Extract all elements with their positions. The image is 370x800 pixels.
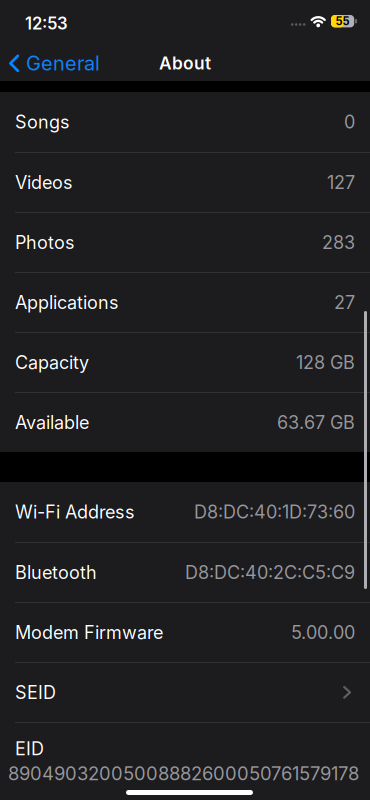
staticText: Wi-Fi Address [15, 501, 135, 523]
button[interactable]: Capacity [0, 332, 370, 392]
staticText: EID [15, 738, 44, 759]
button[interactable]: Photos [0, 212, 370, 272]
staticText: 55 [336, 14, 350, 28]
button[interactable]: Available [0, 392, 370, 452]
button[interactable]: Applications [0, 272, 370, 332]
button[interactable]: Wi-Fi Address [0, 482, 370, 542]
staticText: Capacity [15, 351, 89, 373]
staticText: About [159, 53, 211, 74]
button[interactable]: Songs [0, 92, 370, 152]
button[interactable]: EID [0, 722, 370, 800]
staticText: 63.67 GB [277, 411, 355, 433]
staticText: 27 [334, 291, 355, 313]
button[interactable]: Modem Firmware [0, 602, 370, 662]
button[interactable]: Bluetooth [0, 542, 370, 602]
staticText: 5.00.00 [291, 621, 355, 643]
staticText: D8:DC:40:1D:73:60 [194, 501, 355, 523]
staticText: Available [15, 411, 89, 433]
staticText: 89049032005008882600050761579178 [8, 762, 359, 785]
staticText: Applications [15, 291, 119, 313]
staticText: Bluetooth [15, 561, 97, 583]
staticText: D8:DC:40:2C:C5:C9 [185, 561, 355, 583]
staticText: Photos [15, 231, 75, 253]
button[interactable]: SEID [0, 662, 370, 722]
staticText: SEID [15, 681, 56, 703]
staticText: Songs [15, 111, 70, 133]
staticText: 0 [344, 111, 355, 133]
staticText: Modem Firmware [15, 621, 163, 643]
staticText: 128 GB [296, 351, 355, 373]
staticText: Videos [15, 171, 73, 193]
button[interactable]: Videos [0, 152, 370, 212]
staticText: General [26, 51, 100, 75]
staticText: 12:53 [25, 13, 68, 33]
staticText: 127 [327, 171, 355, 193]
staticText: 283 [322, 231, 355, 253]
button[interactable]: General [0, 48, 100, 73]
